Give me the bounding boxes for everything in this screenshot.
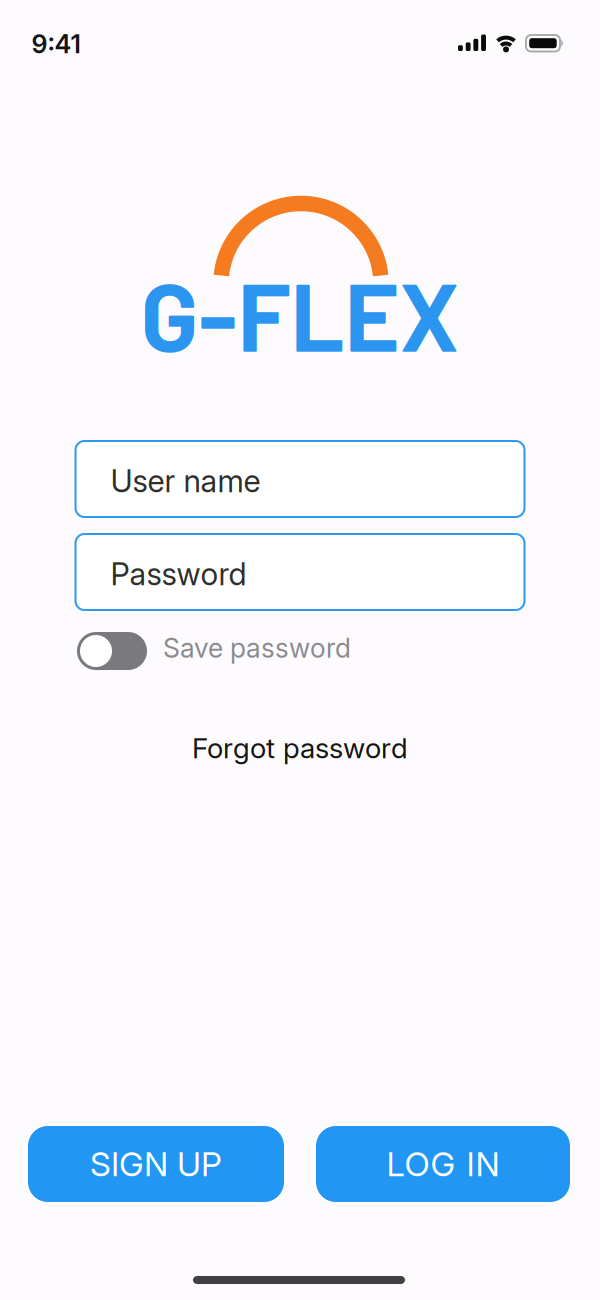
textField[interactable]: Password (110, 555, 524, 592)
staticText: 9:41 (31, 29, 80, 59)
staticText: Password (110, 555, 246, 592)
textField[interactable]: User name (110, 462, 524, 499)
staticText: G-FLEX (140, 257, 459, 371)
staticText: SIGN UP (90, 1144, 222, 1184)
staticText: User name (110, 462, 260, 499)
button[interactable]: LOG IN (316, 1126, 570, 1202)
button[interactable]: Save password (77, 632, 147, 670)
staticText: Save password (163, 632, 351, 664)
button[interactable]: Forgot password (192, 731, 408, 765)
staticText: LOG IN (386, 1144, 499, 1184)
button[interactable]: SIGN UP (28, 1126, 284, 1202)
staticText: Forgot password (192, 731, 408, 765)
